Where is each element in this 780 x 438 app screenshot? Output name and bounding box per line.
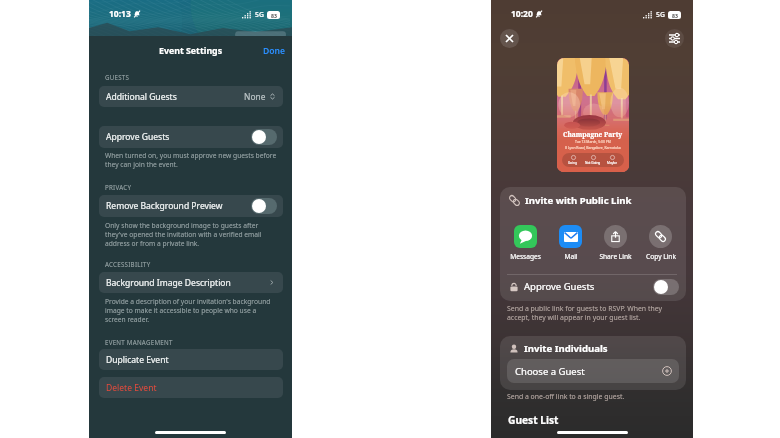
- staticText: 5G: [656, 10, 665, 19]
- button[interactable]: Champagne Party: [557, 58, 629, 172]
- staticText: 83: [271, 12, 277, 19]
- button[interactable]: Approve guests toggle: [251, 198, 277, 214]
- staticText: Going: [568, 161, 578, 165]
- button[interactable]: Approve Guests: [500, 274, 686, 299]
- staticText: Background Image Description: [106, 277, 231, 289]
- button[interactable]: Approve Guests: [99, 126, 283, 148]
- staticText: Provide a description of your invitation…: [105, 297, 271, 324]
- staticText: Messages: [510, 252, 541, 261]
- staticText: Choose a Guest: [515, 365, 585, 378]
- staticText: Remove Background Preview: [106, 200, 223, 212]
- button[interactable]: Choose a Guest: [507, 359, 679, 383]
- staticText: None: [244, 91, 266, 102]
- button[interactable]: Approve guests toggle: [251, 129, 277, 145]
- staticText: Invite with Public Link: [525, 194, 632, 207]
- button[interactable]: Share Link: [595, 225, 636, 261]
- button[interactable]: Going: [568, 155, 578, 165]
- staticText: Champagne Party: [563, 130, 623, 139]
- staticText: Approve Guests: [106, 131, 170, 143]
- staticText: Additional Guests: [106, 91, 177, 103]
- staticText: Approve Guests: [524, 280, 595, 293]
- button[interactable]: Delete Event: [99, 377, 283, 398]
- staticText: Only show the background image to guests…: [105, 221, 262, 248]
- button[interactable]: Duplicate Event: [99, 349, 283, 370]
- button[interactable]: Close: [500, 29, 519, 48]
- staticText: Not Going: [585, 161, 601, 165]
- staticText: 5G: [255, 10, 264, 19]
- staticText: PRIVACY: [105, 183, 132, 191]
- staticText: 10:13: [109, 8, 131, 20]
- staticText: 83: [672, 12, 678, 19]
- staticText: 8 Lyon Road, Bangalore, Karnataka: [565, 145, 621, 150]
- staticText: Invite Individuals: [524, 342, 608, 355]
- staticText: Tue 13 March, 5:00 PM: [575, 139, 611, 144]
- staticText: Send a one-off link to a single guest.: [507, 392, 625, 401]
- button[interactable]: Copy Link: [640, 225, 681, 261]
- button[interactable]: Mail: [550, 225, 591, 261]
- button[interactable]: Not Going: [585, 155, 601, 165]
- staticText: EVENT MANAGEMENT: [105, 338, 173, 346]
- staticText: Send a public link for guests to RSVP. W…: [507, 304, 662, 322]
- button[interactable]: Approve guests toggle: [653, 279, 679, 295]
- staticText: 10:20: [511, 8, 533, 20]
- button[interactable]: Remove Background Preview: [99, 195, 283, 217]
- button[interactable]: Background Image Description: [99, 272, 283, 293]
- staticText: Done: [263, 45, 286, 57]
- staticText: GUESTS: [105, 73, 130, 81]
- staticText: ACCESSIBILITY: [105, 260, 151, 268]
- button[interactable]: Additional Guests: [99, 86, 283, 107]
- button[interactable]: Messages: [505, 225, 546, 261]
- staticText: Maybe: [607, 161, 618, 165]
- button[interactable]: Done: [263, 45, 286, 57]
- staticText: Mail: [564, 252, 578, 261]
- staticText: When turned on, you must approve new gue…: [105, 151, 277, 169]
- staticText: Delete Event: [106, 382, 157, 394]
- staticText: Share Link: [599, 252, 632, 261]
- button[interactable]: Maybe: [607, 155, 618, 165]
- staticText: Guest List: [508, 413, 559, 427]
- staticText: Event Settings: [159, 45, 223, 57]
- staticText: Copy Link: [646, 252, 676, 261]
- button[interactable]: Event options: [665, 29, 684, 48]
- staticText: Duplicate Event: [106, 354, 169, 366]
